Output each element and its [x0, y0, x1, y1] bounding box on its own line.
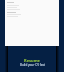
staticText: Resume	[24, 58, 40, 63]
button[interactable]	[5, 0, 59, 46]
staticText: Build your CV fast	[20, 63, 45, 67]
